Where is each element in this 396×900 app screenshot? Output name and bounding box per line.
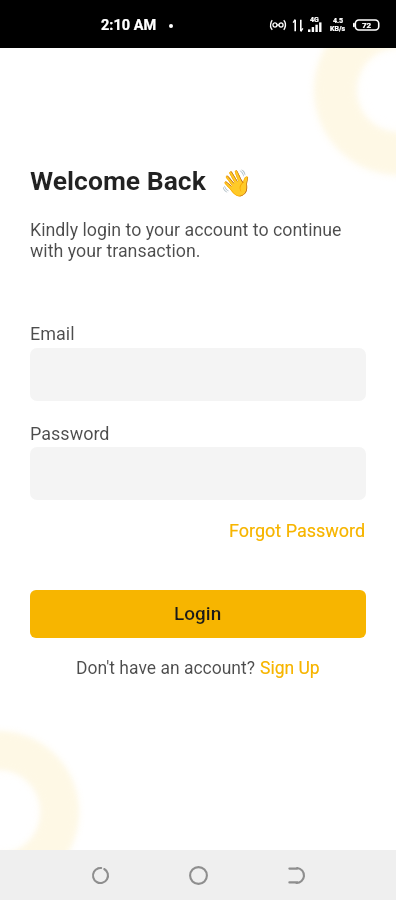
staticText: 72 xyxy=(362,21,372,30)
button[interactable]: Recent apps xyxy=(80,855,120,895)
staticText: Kindly login to your account to continue… xyxy=(30,219,342,261)
staticText: 👋 xyxy=(220,168,253,198)
staticText: Welcome Back xyxy=(30,165,206,196)
staticText: Email xyxy=(30,323,75,344)
button[interactable]: Login xyxy=(30,590,366,638)
staticText: Don't have an account? xyxy=(76,658,260,679)
staticText: KB/s xyxy=(330,25,346,33)
button[interactable]: Sign Up xyxy=(260,658,320,679)
button[interactable]: Forgot Password xyxy=(229,516,366,545)
staticText: 4G xyxy=(310,16,319,24)
staticText: Login xyxy=(174,602,222,624)
staticText: Forgot Password xyxy=(229,520,366,541)
staticText: 2:10 AM xyxy=(101,17,157,34)
button[interactable]: Back xyxy=(276,855,316,895)
staticText: Password xyxy=(30,423,110,444)
button[interactable]: Home xyxy=(178,855,218,895)
staticText: Sign Up xyxy=(260,658,320,679)
staticText: 4.5 xyxy=(333,17,344,25)
